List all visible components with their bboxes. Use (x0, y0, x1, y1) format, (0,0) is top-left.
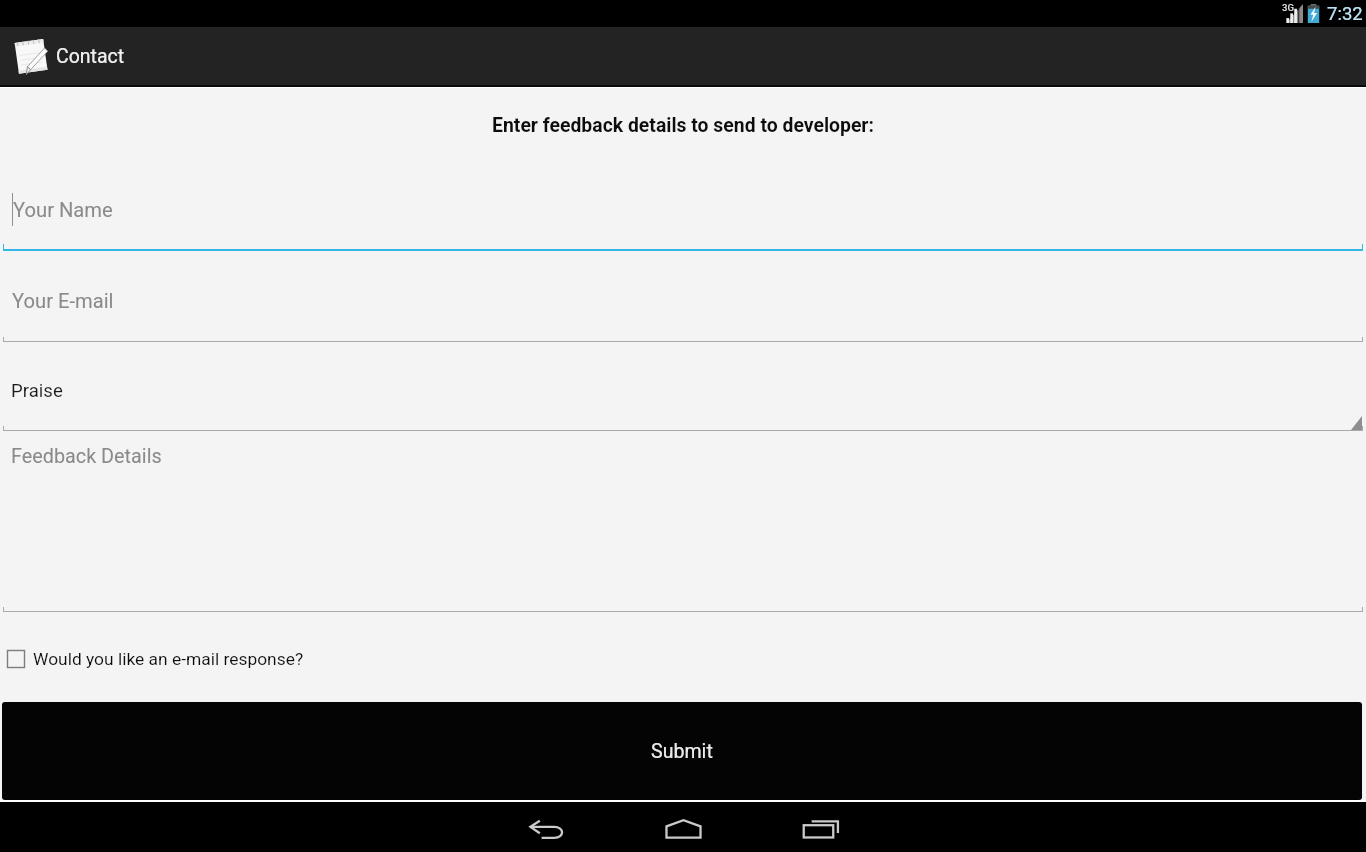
button[interactable]: Would you like an e-mail response? (7, 636, 304, 681)
button[interactable]: Feedback type (0, 342, 1366, 430)
staticText: Your Name (13, 198, 113, 222)
staticText: 3G (1282, 2, 1294, 13)
staticText: Would you like an e-mail response? (33, 649, 304, 669)
staticText: 7:32 (1327, 3, 1363, 25)
staticText: Your E-mail (12, 289, 114, 313)
button[interactable]: Your E-mail (0, 251, 1366, 341)
button[interactable]: Submit (2, 702, 1362, 800)
staticText: Contact (56, 45, 125, 68)
staticText: Praise (11, 380, 63, 402)
button[interactable]: Contact (11, 36, 125, 76)
button[interactable]: Your Name (0, 157, 1366, 249)
button[interactable]: Recent apps (752, 804, 889, 852)
staticText: Submit (651, 740, 713, 763)
button[interactable]: Home (615, 804, 752, 852)
button[interactable]: Back (478, 804, 615, 852)
button[interactable]: Feedback Details (0, 431, 1366, 611)
staticText: Enter feedback details to send to develo… (0, 114, 1366, 137)
staticText: Feedback Details (11, 445, 162, 468)
